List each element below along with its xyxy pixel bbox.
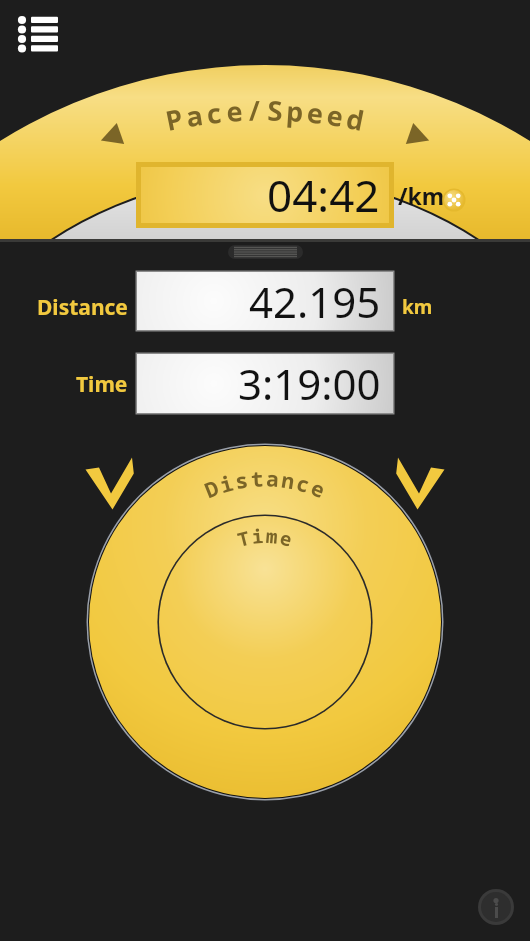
button[interactable]: Distance mode [66, 40, 196, 160]
button[interactable]: Menu [4, 8, 64, 60]
button[interactable]: Distance dial [89, 446, 441, 798]
button[interactable]: Distance 42.195 km [137, 272, 393, 330]
button[interactable]: Time 3:19:00 [137, 354, 393, 413]
button[interactable]: Pace/Speed mode [196, 20, 336, 100]
button[interactable]: Time mode [400, 40, 528, 160]
button[interactable]: Change units [441, 187, 468, 214]
button[interactable]: Info [478, 889, 514, 925]
button[interactable]: Time dial [159, 516, 371, 728]
button[interactable]: Pace value 04:42 [136, 162, 394, 228]
